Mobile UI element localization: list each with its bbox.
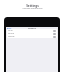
staticText: Back: [7, 27, 12, 30]
staticText: Settings: [26, 4, 39, 8]
staticText: Manage preferences: [22, 7, 43, 10]
staticText: Theme: [8, 35, 15, 38]
staticText: General: [28, 27, 36, 30]
button[interactable]: Back: [6, 27, 12, 30]
staticText: Sound: [8, 32, 15, 35]
button[interactable]: Sound: [7, 32, 57, 35]
button[interactable]: Wi-Fi: [7, 29, 57, 32]
button[interactable]: Theme: [7, 35, 57, 38]
staticText: Wi-Fi: [8, 29, 13, 32]
